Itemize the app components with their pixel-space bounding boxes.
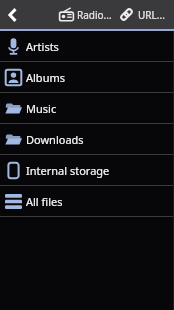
- staticText: Artists: [26, 39, 59, 54]
- staticText: All files: [26, 194, 63, 209]
- button[interactable]: [0, 0, 26, 29]
- staticText: Downloads: [26, 132, 84, 147]
- button[interactable]: Albums: [0, 62, 174, 92]
- button[interactable]: Internal storage: [0, 155, 174, 185]
- staticText: Radio...: [77, 8, 112, 22]
- button[interactable]: Downloads: [0, 124, 174, 154]
- button[interactable]: Artists: [0, 31, 174, 61]
- staticText: URL...: [138, 8, 165, 22]
- button[interactable]: Music: [0, 93, 174, 123]
- staticText: Music: [26, 101, 57, 116]
- staticText: Albums: [26, 70, 65, 85]
- button[interactable]: Radio...: [56, 0, 115, 29]
- button[interactable]: All files: [0, 186, 174, 216]
- staticText: Internal storage: [26, 163, 110, 178]
- button[interactable]: URL...: [116, 0, 168, 29]
